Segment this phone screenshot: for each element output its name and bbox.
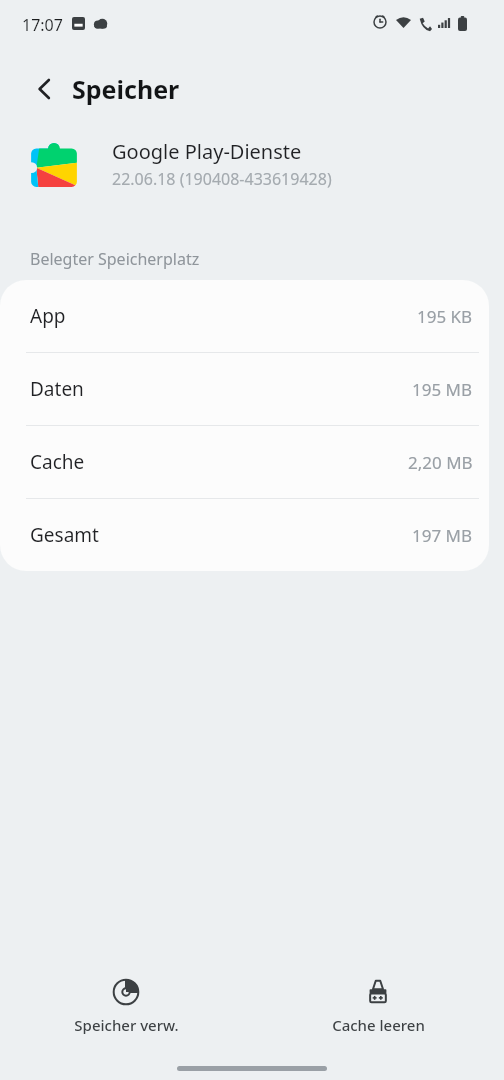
- staticText: Cache leeren: [332, 1015, 425, 1035]
- staticText: Belegter Speicherplatz: [30, 248, 200, 270]
- staticText: 195 MB: [412, 378, 473, 401]
- staticText: Cache: [30, 449, 85, 475]
- staticText: App: [30, 303, 66, 329]
- staticText: 2,20 MB: [408, 451, 473, 474]
- staticText: 195 KB: [417, 305, 473, 328]
- button[interactable]: Gesamt: [0, 499, 489, 571]
- button[interactable]: App: [0, 280, 489, 353]
- button[interactable]: Speicher verwalten: [0, 960, 252, 1035]
- staticText: 22.06.18 (190408-433619428): [112, 168, 332, 190]
- button[interactable]: Daten: [0, 353, 489, 426]
- button[interactable]: Cache leeren: [252, 960, 504, 1035]
- staticText: Google Play-Dienste: [112, 138, 302, 165]
- staticText: 197 MB: [412, 524, 473, 547]
- button[interactable]: Cache: [0, 426, 489, 499]
- staticText: 17:07: [22, 14, 63, 36]
- staticText: Speicher verw.: [74, 1015, 179, 1035]
- button[interactable]: Back: [20, 66, 66, 112]
- staticText: Speicher: [72, 72, 180, 106]
- staticText: Gesamt: [30, 522, 99, 548]
- staticText: Daten: [30, 376, 84, 402]
